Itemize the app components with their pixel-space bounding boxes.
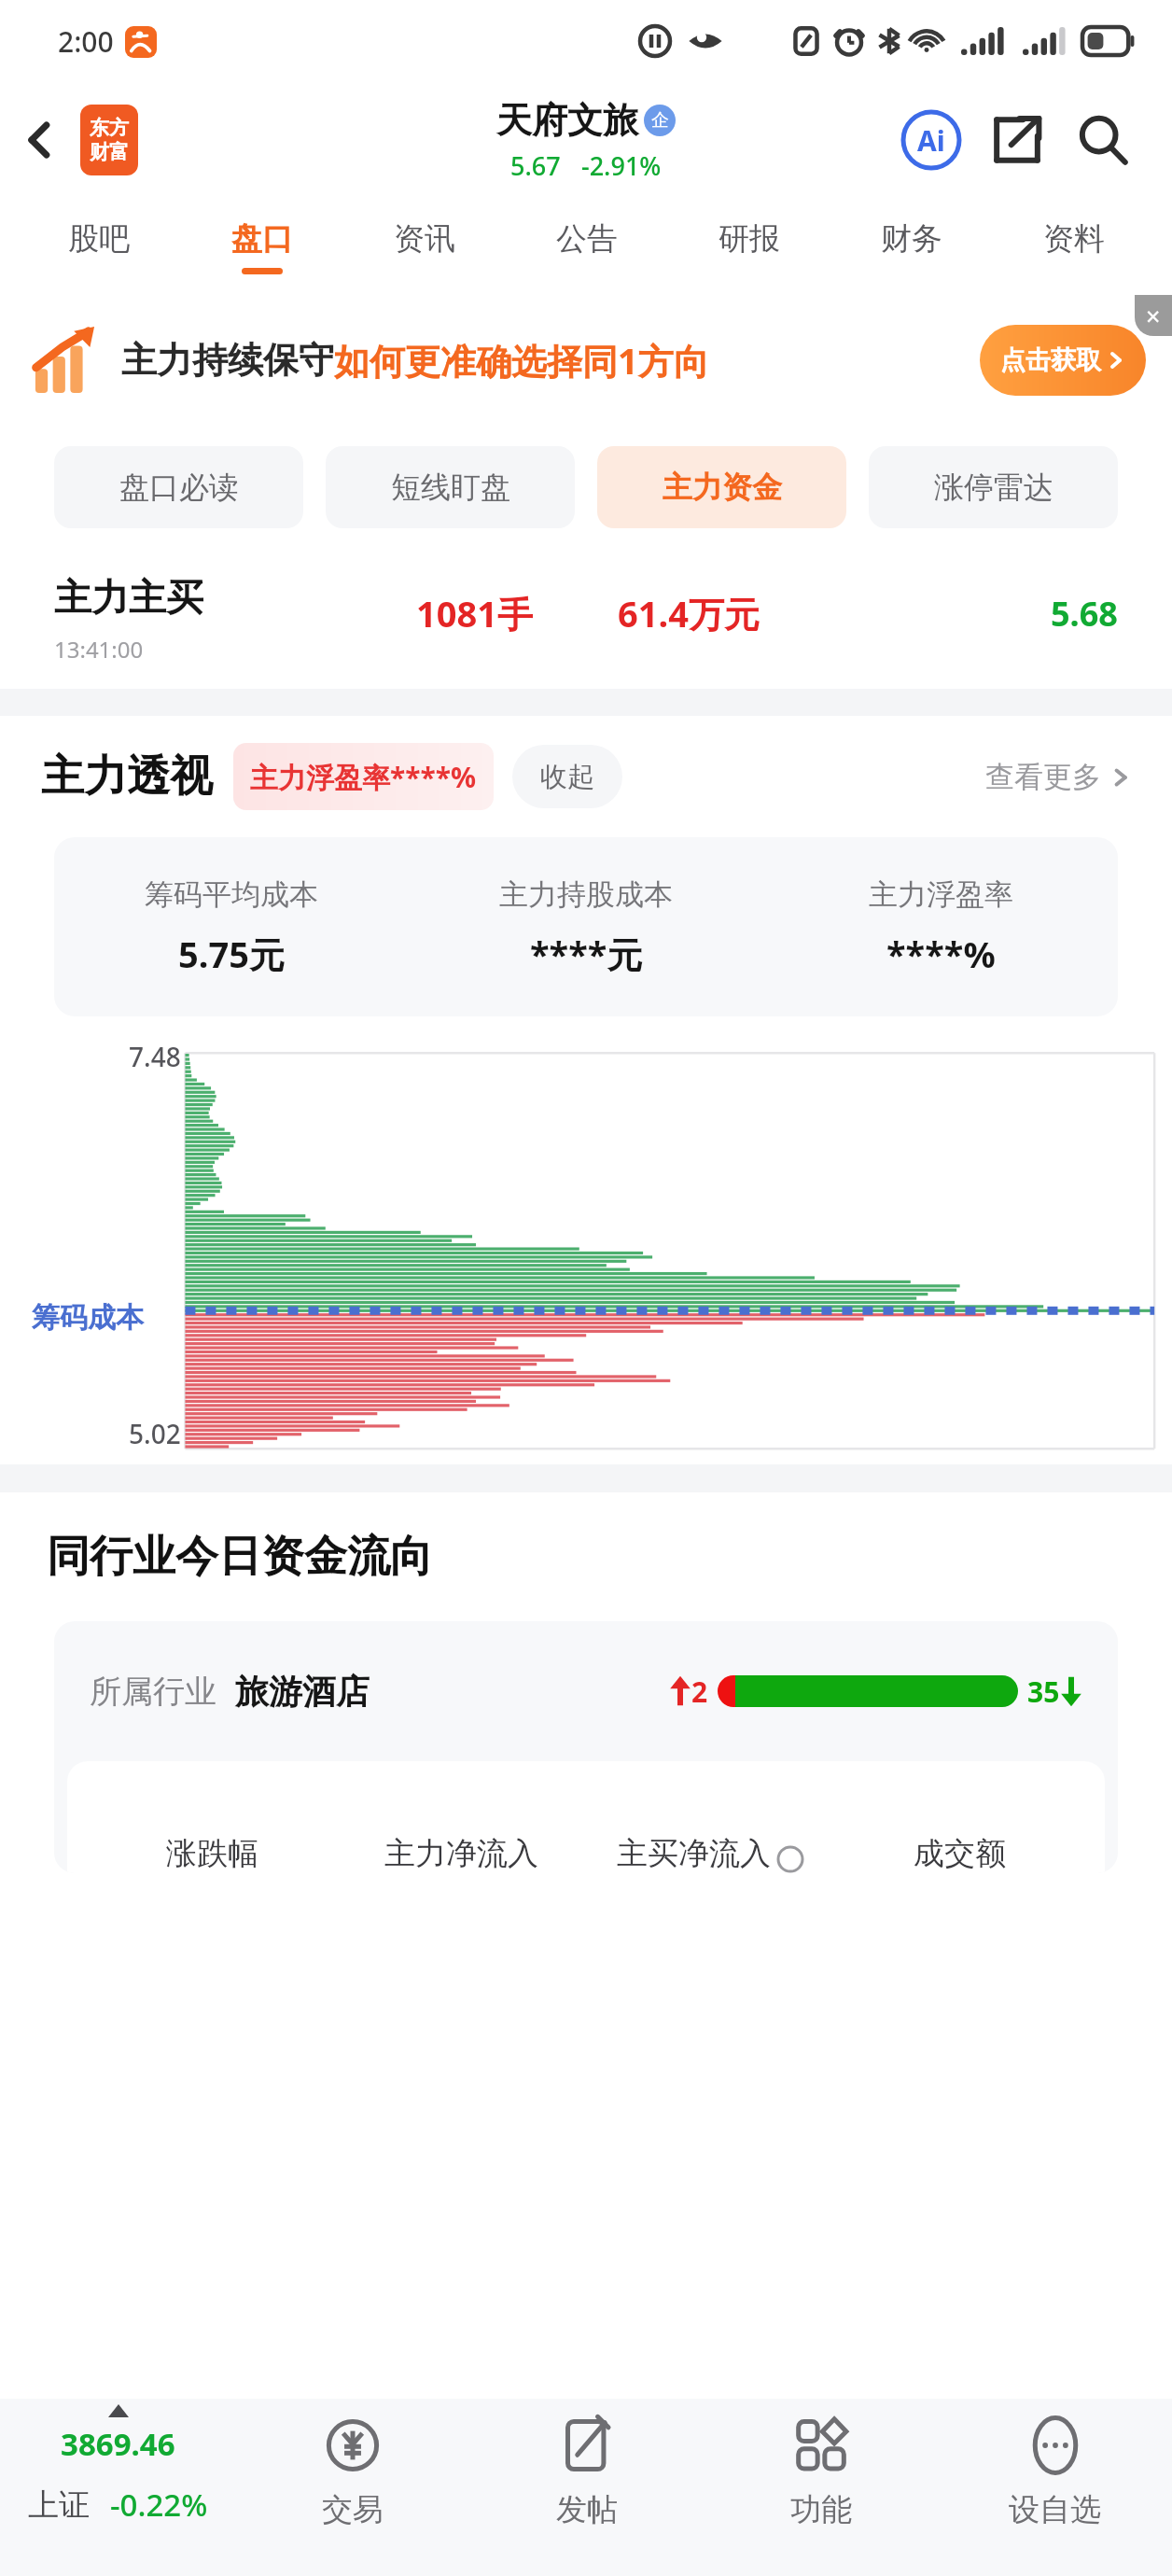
staticText: 主力净流入 [384, 1834, 538, 1873]
button[interactable]: 盘口 [180, 198, 343, 295]
button[interactable]: 发帖 [469, 2399, 704, 2576]
staticText: 财富 [90, 140, 129, 164]
staticText: × [1146, 299, 1161, 333]
staticText: 35 [1027, 1673, 1060, 1711]
staticText: Ai [917, 121, 945, 160]
button[interactable]: 所属行业 [90, 1621, 1082, 1761]
button[interactable]: 查看更多 [985, 759, 1131, 795]
staticText: 筹码成本 [32, 1300, 144, 1336]
staticText: 主力主买 [54, 574, 203, 621]
staticText: 13:41:00 [54, 634, 144, 665]
staticText: ****% [886, 930, 996, 978]
staticText: 功能 [790, 2490, 852, 2529]
button[interactable]: Back [0, 100, 80, 180]
button[interactable]: AI [888, 97, 974, 183]
button[interactable]: 研报 [668, 198, 830, 295]
button[interactable]: 股吧 [17, 198, 180, 295]
staticText: -2.91% [581, 148, 662, 183]
staticText: 公告 [556, 219, 618, 259]
staticText: 上证 [28, 2485, 90, 2525]
button[interactable]: 3869.46 [0, 2399, 235, 2576]
staticText: ****元 [530, 930, 643, 978]
staticText: 1081手 [416, 589, 533, 637]
staticText: -0.22% [110, 2484, 208, 2526]
staticText: 旅游酒店 [235, 1671, 370, 1713]
button[interactable]: Search [1060, 97, 1146, 183]
staticText: 点击获取 [1000, 344, 1101, 376]
staticText: 7.48 [129, 1039, 181, 1074]
staticText: 主力持续保守 [121, 338, 334, 383]
staticText: 5.68 [1051, 591, 1118, 637]
button[interactable]: 筹码平均成本 [54, 837, 1118, 1016]
staticText: 股吧 [68, 219, 130, 259]
staticText: 筹码平均成本 [145, 876, 318, 913]
staticText: 成交额 [914, 1834, 1006, 1873]
staticText: 资讯 [394, 219, 455, 259]
button[interactable]: Share [974, 97, 1060, 183]
button[interactable]: 盘口必读 [54, 446, 303, 528]
staticText: 发帖 [556, 2490, 618, 2529]
button[interactable]: 主力浮盈率****% [250, 743, 477, 810]
staticText: 主力浮盈率 [869, 876, 1013, 913]
staticText: 5.67 [510, 148, 561, 183]
staticText: 5.02 [129, 1416, 181, 1451]
staticText: 涨跌幅 [166, 1834, 258, 1873]
staticText: 研报 [719, 219, 780, 259]
staticText: 2 [691, 1673, 708, 1711]
staticText: 收起 [540, 760, 594, 794]
staticText: 61.4万元 [618, 589, 760, 637]
staticText: 如何更准确选择同1方向 [334, 336, 709, 385]
staticText: 设自选 [1009, 2490, 1101, 2529]
staticText: 查看更多 [985, 759, 1101, 795]
button[interactable]: 资讯 [343, 198, 506, 295]
staticText: 涨停雷达 [934, 469, 1053, 506]
button[interactable]: 资料 [993, 198, 1155, 295]
staticText: 所属行业 [90, 1672, 216, 1712]
button[interactable]: East Money [80, 105, 138, 175]
staticText: 财务 [881, 219, 942, 259]
staticText: 5.75元 [178, 930, 285, 978]
button[interactable]: 短线盯盘 [326, 446, 575, 528]
staticText: 主力资金 [663, 469, 782, 506]
staticText: 盘口必读 [119, 469, 239, 506]
staticText: 3869.46 [61, 2423, 175, 2465]
staticText: 主买净流入 [617, 1834, 771, 1873]
staticText: 盘口 [231, 219, 293, 259]
staticText: 交易 [322, 2490, 384, 2529]
button[interactable]: 功能 [704, 2399, 938, 2576]
staticText: 主力持股成本 [499, 876, 673, 913]
staticText: 天府文旅 [496, 98, 638, 143]
staticText: 主力浮盈率****% [250, 758, 477, 796]
staticText: 企 [651, 109, 669, 132]
staticText: 同行业今日资金流向 [47, 1530, 433, 1584]
button[interactable]: 公告 [506, 198, 668, 295]
button[interactable]: 财务 [830, 198, 993, 295]
staticText: 东方 [90, 116, 129, 140]
staticText: 资料 [1043, 219, 1105, 259]
staticText: 主力透视 [41, 749, 213, 804]
button[interactable]: 设自选 [938, 2399, 1172, 2576]
button[interactable]: Close [1135, 295, 1172, 336]
button[interactable]: 主力资金 [597, 446, 846, 528]
button[interactable]: 收起 [512, 745, 622, 808]
button[interactable]: 涨停雷达 [869, 446, 1118, 528]
button[interactable]: 点击获取 [980, 325, 1146, 396]
staticText: 2:00 [58, 22, 114, 61]
staticText: 短线盯盘 [391, 469, 510, 506]
button[interactable]: 交易 [235, 2399, 469, 2576]
